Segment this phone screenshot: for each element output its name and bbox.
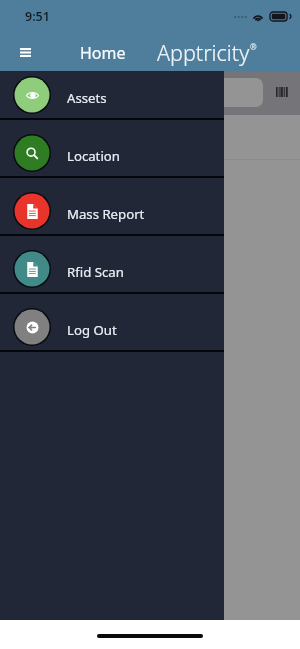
staticText: ® (250, 41, 257, 52)
staticText: Rfid Scan (67, 263, 124, 281)
button[interactable]: Open navigation menu (5, 32, 45, 72)
staticText: Apptricity (157, 38, 250, 67)
staticText: Location (67, 147, 120, 165)
button[interactable] (12, 78, 263, 107)
staticText: Mass Report (67, 205, 145, 223)
button[interactable]: Scan barcode (272, 82, 292, 102)
staticText: Log Out (67, 321, 117, 339)
button[interactable]: Mass Report (0, 178, 224, 236)
staticText: 9:51 (25, 8, 50, 25)
staticText: Assets (67, 89, 107, 107)
button[interactable]: Rfid Scan (0, 236, 224, 294)
button[interactable]: Home (80, 42, 126, 64)
button[interactable]: Log Out (0, 294, 224, 352)
button[interactable]: Assets (0, 71, 224, 120)
button[interactable]: Location (0, 120, 224, 178)
